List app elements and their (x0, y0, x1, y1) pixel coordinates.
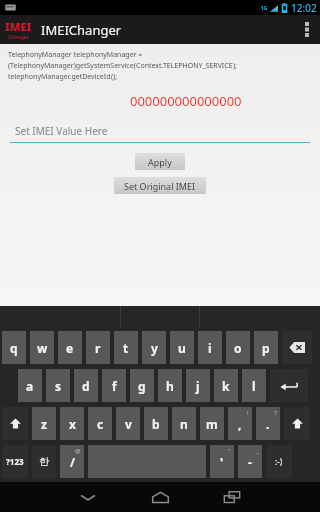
button[interactable]: n (172, 407, 196, 440)
staticText: TelephonyManager (8, 50, 72, 60)
staticText: b (152, 416, 160, 432)
button[interactable]: Hide keyboard (52, 482, 124, 512)
button[interactable]: a (18, 369, 42, 402)
button[interactable]: x (60, 407, 84, 440)
staticText: Context.TELEPHONY_SERVICE (136, 61, 233, 71)
staticText: 한 (39, 455, 49, 468)
staticText: x (69, 416, 76, 432)
staticText: a (26, 378, 34, 394)
staticText: ); (233, 61, 237, 71)
staticText: :-) (275, 456, 283, 467)
staticText: " (228, 447, 231, 455)
button[interactable]: g (130, 369, 154, 402)
button[interactable]: m (200, 407, 224, 440)
button[interactable]: Set Original IMEI (114, 177, 206, 194)
staticText: Apply (148, 156, 172, 168)
staticText: 000000000000000 (130, 92, 242, 110)
staticText: , (238, 416, 242, 432)
button[interactable]: Enter (270, 369, 308, 402)
button[interactable]: Home (124, 482, 196, 512)
staticText: ? (274, 409, 277, 417)
button[interactable]: Shift (284, 407, 310, 440)
staticText: Changer (8, 34, 30, 41)
button[interactable]: q (2, 331, 26, 364)
staticText: (); (111, 72, 118, 82)
button[interactable]: . (256, 407, 280, 440)
staticText: - (248, 454, 252, 470)
staticText: c (97, 416, 104, 432)
button[interactable]: / (60, 445, 84, 478)
staticText: IMEI (5, 19, 32, 34)
staticText: z (41, 416, 47, 432)
staticText: IMEIChanger (41, 21, 122, 39)
button[interactable]: i (198, 331, 222, 364)
button[interactable]: Apply (135, 153, 185, 170)
button[interactable]: Recent apps (196, 482, 268, 512)
staticText: d (82, 378, 90, 394)
button[interactable]: ?123 (2, 445, 28, 478)
staticText: r (95, 340, 101, 356)
staticText: i (208, 340, 212, 356)
staticText: k (222, 378, 230, 394)
button[interactable]: s (46, 369, 70, 402)
staticText: q (10, 340, 18, 356)
staticText: n (180, 416, 188, 432)
staticText: e (66, 340, 74, 356)
staticText: ?123 (6, 456, 24, 467)
button[interactable]: , (228, 407, 252, 440)
button[interactable]: More options (294, 15, 320, 44)
button[interactable]: l (242, 369, 266, 402)
button[interactable]: y (142, 331, 166, 364)
button[interactable]: r (86, 331, 110, 364)
button[interactable]: p (254, 331, 278, 364)
button[interactable]: k (214, 369, 238, 402)
staticText: g (138, 378, 146, 394)
staticText: . (266, 416, 270, 432)
button[interactable]: Change language (32, 445, 56, 478)
staticText: @ (75, 447, 81, 455)
staticText: _ (256, 447, 259, 455)
button[interactable]: d (74, 369, 98, 402)
staticText: 12:02 (291, 1, 317, 15)
button[interactable]: w (30, 331, 54, 364)
staticText: Set IMEI Value Here (15, 124, 108, 138)
staticText: ' (220, 454, 224, 470)
staticText: v (125, 416, 132, 432)
button[interactable]: Set IMEI Value Here (10, 124, 310, 143)
staticText: s (55, 378, 62, 394)
staticText: o (234, 340, 242, 356)
staticText: y (151, 340, 158, 356)
button[interactable]: v (116, 407, 140, 440)
button[interactable]: t (114, 331, 138, 364)
staticText: f (112, 378, 117, 394)
button[interactable]: ' (210, 445, 234, 478)
staticText: (TelephonyManager)getSystemService( (8, 61, 136, 71)
button[interactable]: b (144, 407, 168, 440)
button[interactable]: e (58, 331, 82, 364)
staticText: h (166, 378, 174, 394)
staticText: u (178, 340, 186, 356)
staticText: / (70, 454, 75, 470)
button[interactable]: z (32, 407, 56, 440)
button[interactable]: o (226, 331, 250, 364)
button[interactable]: h (158, 369, 182, 402)
staticText: m (206, 416, 218, 432)
button[interactable]: f (102, 369, 126, 402)
button[interactable]: - (238, 445, 262, 478)
staticText: Set Original IMEI (124, 180, 196, 192)
button[interactable]: Shift (2, 407, 28, 440)
staticText: 1G (261, 5, 268, 12)
staticText: telephonyManager = (72, 50, 143, 60)
staticText: w (37, 340, 48, 356)
staticText: j (196, 378, 200, 394)
staticText: l (252, 378, 256, 394)
staticText: t (123, 340, 129, 356)
staticText: telephonyManager.getDeviceId (8, 72, 111, 82)
button[interactable]: u (170, 331, 194, 364)
button[interactable]: Backspace (282, 331, 312, 364)
staticText: ! (247, 409, 249, 417)
button[interactable]: :-) (266, 445, 292, 478)
button[interactable]: c (88, 407, 112, 440)
button[interactable]: j (186, 369, 210, 402)
